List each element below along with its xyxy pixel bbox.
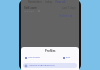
- staticText: Edit: [66, 56, 71, 59]
- staticText: Reminders: [28, 0, 42, 4]
- staticText: Last 7 days: [62, 6, 76, 10]
- staticText: Details: [59, 14, 69, 18]
- staticText: UPDATE SUBSCRIPTIONS: [29, 64, 55, 67]
- staticText: summary: [24, 10, 35, 13]
- button[interactable]: Edit: [63, 56, 71, 59]
- staticText: today: [45, 0, 53, 4]
- staticText: Add Profile: [28, 56, 40, 59]
- button[interactable]: View all: [55, 0, 66, 4]
- staticText: Self-care: [24, 6, 37, 10]
- staticText: View all: [55, 0, 66, 4]
- button[interactable]: UPDATE SUBSCRIPTIONS: [23, 63, 77, 68]
- button[interactable]: Add Profile: [25, 56, 40, 59]
- staticText: Profiles: [45, 49, 56, 52]
- button[interactable]: Details: [59, 14, 72, 18]
